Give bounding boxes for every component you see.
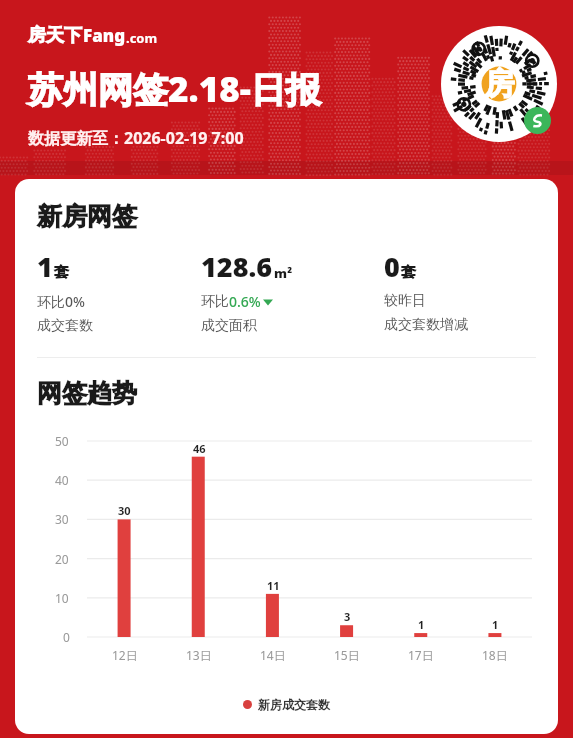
staticText: 46 (193, 441, 206, 456)
staticText: 较昨日 (384, 292, 426, 310)
staticText: 0 (63, 629, 70, 645)
staticText: 14日 (260, 647, 286, 663)
staticText: 30 (118, 503, 131, 518)
staticText: 17日 (408, 647, 434, 663)
staticText: 数据更新至：2026-02-19 7:00 (28, 127, 244, 149)
staticText: 1 (418, 617, 425, 632)
staticText: 套 (401, 263, 416, 282)
staticText: 20 (55, 551, 69, 567)
staticText: 18日 (482, 647, 508, 663)
staticText: 10 (55, 590, 69, 606)
staticText: 30 (55, 511, 69, 527)
staticText: .com (126, 29, 158, 47)
staticText: 1 (492, 617, 499, 632)
staticText: 套 (54, 263, 69, 282)
staticText: 12日 (112, 647, 138, 663)
staticText: 3 (344, 609, 351, 624)
staticText: 15日 (334, 647, 360, 663)
button[interactable]: 1 (37, 248, 201, 335)
staticText: 环比0% (37, 292, 85, 311)
staticText: Fang (83, 24, 126, 47)
staticText: 0.6% (229, 292, 261, 311)
staticText: 13日 (186, 647, 212, 663)
staticText: 新房网签 (37, 201, 137, 232)
button[interactable]: 新房成交套数 (243, 697, 330, 712)
staticText: 房天下 (28, 24, 82, 47)
staticText: 苏州网签2.18-日报 (28, 65, 321, 113)
staticText: 50 (55, 433, 69, 449)
staticText: 成交套数增减 (384, 316, 468, 334)
button[interactable]: 扫码二维码 (441, 26, 557, 142)
staticText: 房 (484, 65, 514, 103)
staticText: 成交面积 (201, 317, 257, 335)
staticText: 0 (384, 248, 400, 285)
button[interactable]: 128.6 (201, 248, 384, 335)
staticText: 1 (37, 248, 53, 285)
staticText: 11 (267, 578, 280, 593)
staticText: 新房成交套数 (258, 697, 330, 712)
staticText: 环比 (201, 293, 229, 311)
staticText: m² (274, 264, 293, 282)
staticText: 40 (55, 472, 69, 488)
staticText: 网签趋势 (37, 378, 137, 409)
button[interactable]: 0 (384, 248, 548, 334)
staticText: 成交套数 (37, 317, 93, 335)
staticText: 128.6 (201, 248, 273, 285)
